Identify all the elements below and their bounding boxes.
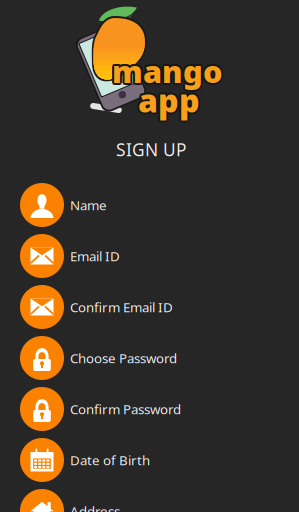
staticText: Address — [70, 502, 120, 512]
staticText: Choose Password — [70, 349, 177, 367]
staticText: Email ID — [70, 247, 120, 265]
staticText: mango — [110, 52, 221, 93]
staticText: Name — [70, 196, 107, 214]
button[interactable]: Choose Password — [20, 336, 290, 380]
staticText: Confirm Password — [70, 400, 181, 418]
staticText: app — [136, 80, 198, 123]
staticText: mango — [112, 51, 223, 91]
staticText: mango — [114, 49, 225, 90]
staticText: app — [138, 79, 200, 121]
staticText: Confirm Email ID — [70, 298, 173, 316]
staticText: SIGN UP — [116, 138, 186, 161]
button[interactable]: Date of Birth — [20, 438, 290, 482]
staticText: mango — [112, 53, 223, 93]
staticText: app — [138, 81, 200, 123]
staticText: mango — [114, 51, 225, 91]
staticText: mango — [114, 52, 225, 93]
staticText: mango — [112, 49, 223, 89]
button[interactable]: Email ID — [20, 234, 290, 278]
staticText: mango — [110, 49, 221, 90]
staticText: mango — [110, 51, 221, 91]
staticText: app — [140, 77, 202, 120]
button[interactable]: Address — [20, 489, 290, 512]
staticText: app — [140, 79, 202, 121]
staticText: app — [140, 80, 202, 123]
staticText: app — [136, 79, 198, 121]
staticText: Date of Birth — [70, 451, 150, 469]
button[interactable]: Name — [20, 183, 290, 227]
staticText: app — [136, 77, 198, 120]
staticText: app — [138, 77, 200, 119]
button[interactable]: Confirm Email ID — [20, 285, 290, 329]
button[interactable]: Confirm Password — [20, 387, 290, 431]
